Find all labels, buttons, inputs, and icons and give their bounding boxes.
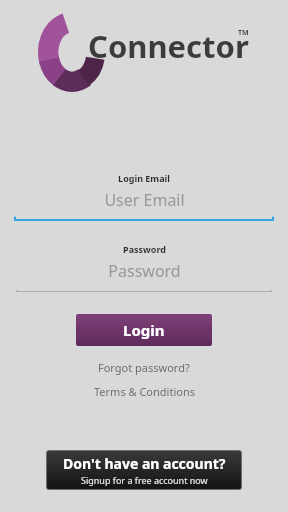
staticText: Terms & Conditions (94, 384, 195, 399)
staticText: User Email (104, 189, 185, 211)
button[interactable]: Forgot password? (90, 358, 198, 377)
button[interactable]: Login (76, 314, 212, 346)
button[interactable]: Don't have an account? (47, 451, 241, 489)
staticText: Password (123, 243, 166, 255)
staticText: Connector (88, 25, 249, 67)
staticText: Signup for a free account now (81, 474, 208, 486)
staticText: Don't have an account? (63, 454, 226, 473)
staticText: Password (108, 260, 181, 282)
button[interactable]: Terms & Conditions (86, 382, 203, 401)
staticText: Forgot password? (98, 360, 190, 375)
staticText: Login (123, 320, 165, 340)
staticText: Login Email (118, 172, 170, 184)
staticText: TM (238, 28, 249, 38)
